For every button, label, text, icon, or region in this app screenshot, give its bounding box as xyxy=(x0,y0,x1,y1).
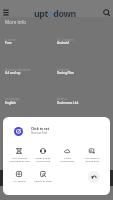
staticText: UA setting xyxy=(13,179,26,182)
staticText: 4.4 and up xyxy=(5,71,21,75)
staticText: Requires Android xyxy=(5,68,31,72)
staticText: Auto splicing next page on wifi xyxy=(9,156,30,162)
staticText: License xyxy=(5,38,16,42)
button[interactable]: Click to set xyxy=(31,126,50,130)
staticText: Shortcut Tool xyxy=(31,131,48,135)
staticText: Cloud acceleration xyxy=(60,156,75,162)
staticText: Op. System xyxy=(57,38,74,42)
staticText: uptodown xyxy=(34,8,76,20)
staticText: Android xyxy=(57,41,69,45)
button[interactable] xyxy=(31,148,55,168)
staticText: Adapt Screen Layout Style xyxy=(35,156,51,162)
button[interactable] xyxy=(7,171,31,191)
button[interactable]: Search xyxy=(101,7,112,18)
button[interactable]: Shortcut Tool xyxy=(14,127,23,136)
staticText: Racing/Sim xyxy=(57,71,74,75)
button[interactable] xyxy=(7,148,31,168)
staticText: Search in page xyxy=(34,179,52,182)
button[interactable] xyxy=(80,148,104,168)
button[interactable] xyxy=(31,171,55,191)
staticText: Free xyxy=(5,41,12,45)
staticText: English xyxy=(5,101,16,105)
staticText: No image on mobile data xyxy=(84,156,100,162)
button[interactable]: Menu xyxy=(1,7,12,18)
staticText: Category xyxy=(57,68,71,72)
button[interactable] xyxy=(55,148,79,168)
staticText: Dodreams Ltd. xyxy=(57,101,79,105)
staticText: Language xyxy=(5,97,20,101)
staticText: Author xyxy=(57,97,68,101)
staticText: More info xyxy=(5,19,26,25)
button[interactable]: Undo xyxy=(88,171,100,183)
